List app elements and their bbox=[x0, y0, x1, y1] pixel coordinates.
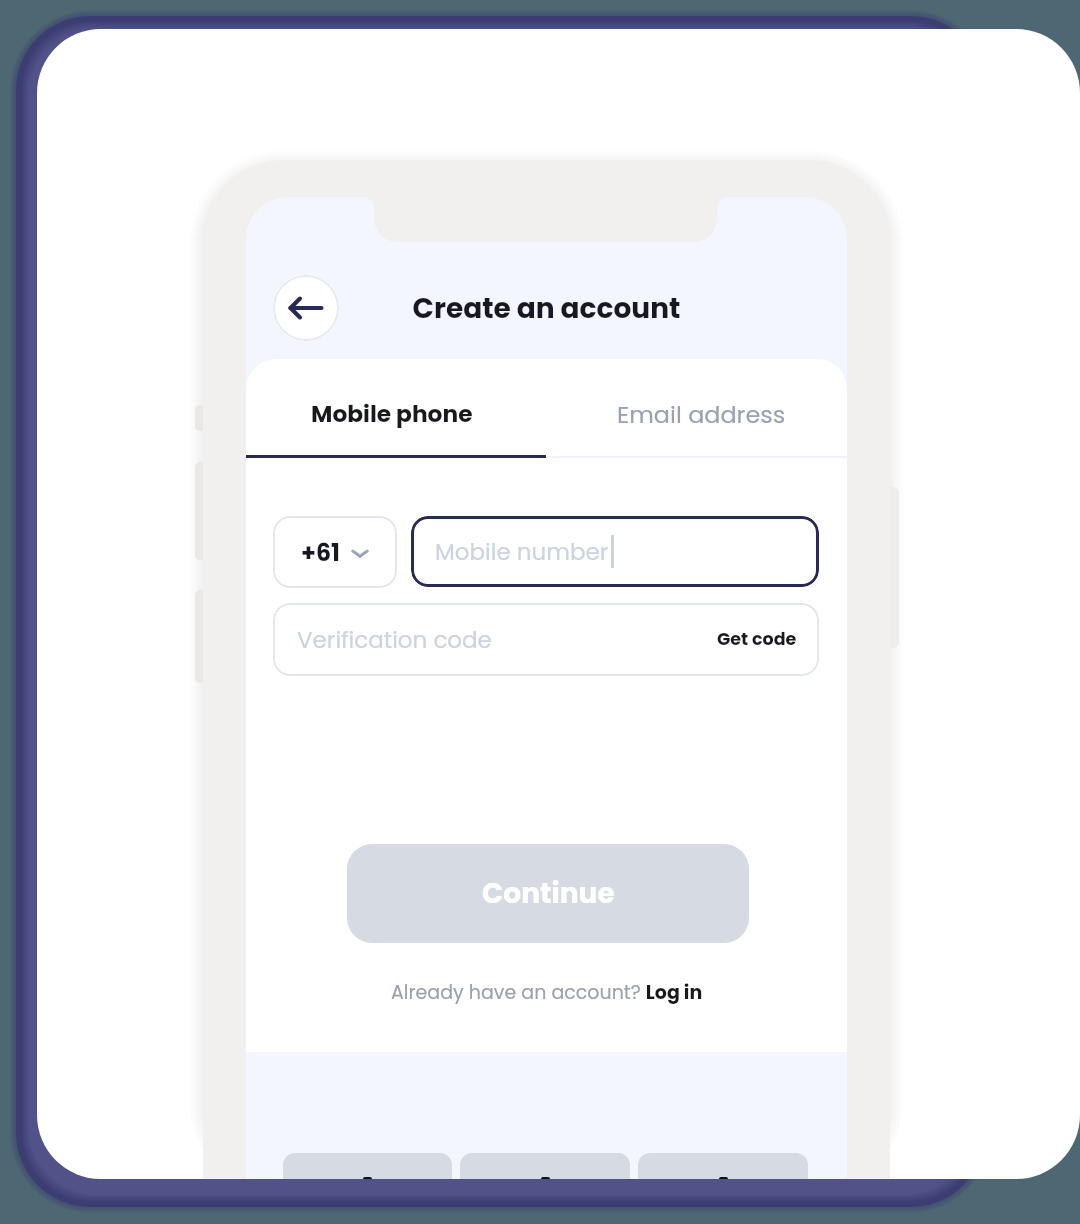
button[interactable]: Verification code bbox=[273, 603, 819, 676]
staticText: Mobile phone bbox=[311, 398, 473, 431]
button[interactable]: +61 bbox=[273, 516, 397, 588]
staticText: +61 bbox=[301, 536, 340, 569]
button[interactable]: Mobile phone bbox=[246, 366, 538, 462]
staticText: Already have an account? Log in bbox=[391, 979, 703, 1006]
button[interactable]: Email address bbox=[551, 366, 847, 462]
staticText: Verification code bbox=[297, 624, 492, 656]
button[interactable]: Mobile number bbox=[411, 516, 819, 587]
button[interactable]: Continue bbox=[347, 844, 749, 943]
button[interactable] bbox=[638, 1153, 808, 1179]
button[interactable] bbox=[460, 1153, 630, 1179]
staticText: Mobile number bbox=[435, 536, 609, 568]
staticText: Create an account bbox=[246, 289, 847, 328]
staticText: Email address bbox=[617, 398, 786, 431]
button[interactable]: Back bbox=[273, 275, 339, 341]
button[interactable]: Already have an account? Log in bbox=[246, 973, 847, 1011]
staticText: Get code bbox=[717, 627, 797, 652]
staticText: Continue bbox=[482, 874, 615, 913]
button[interactable] bbox=[283, 1153, 452, 1179]
